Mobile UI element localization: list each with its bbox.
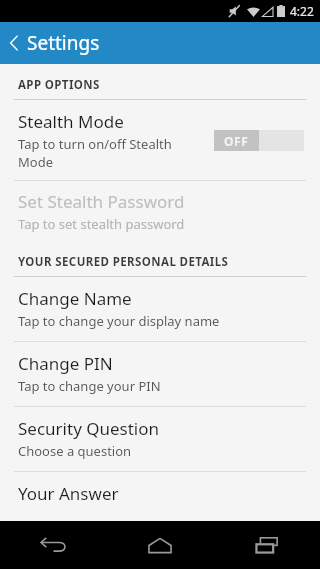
staticText: Tap to change your PIN — [18, 377, 161, 395]
button[interactable]: Security Question — [0, 407, 320, 471]
button[interactable]: Change Name — [0, 277, 320, 341]
staticText: Tap to change your display name — [18, 312, 220, 330]
staticText: APP OPTIONS — [18, 77, 100, 93]
button[interactable]: Stealth Mode — [0, 100, 320, 180]
staticText: 4:22 — [290, 3, 314, 19]
button[interactable]: Back — [0, 521, 106, 569]
button[interactable]: Settings — [0, 22, 320, 64]
staticText: Settings — [27, 30, 100, 56]
staticText: Stealth Mode — [18, 110, 124, 133]
staticText: Tap to set stealth password — [18, 215, 185, 233]
staticText: Set Stealth Password — [18, 190, 185, 213]
button[interactable]: Change PIN — [0, 342, 320, 406]
staticText: Change PIN — [18, 352, 113, 375]
staticText: YOUR SECURED PERSONAL DETAILS — [18, 254, 229, 270]
button[interactable]: Stealth Mode toggle, off — [214, 130, 304, 151]
button[interactable]: Recent apps — [213, 521, 320, 569]
staticText: Change Name — [18, 287, 132, 310]
button[interactable]: Your Answer — [0, 472, 320, 521]
button[interactable]: Set Stealth Password — [0, 181, 320, 242]
staticText: Tap to turn on/off Stealth Mode — [18, 135, 206, 171]
staticText: OFF — [224, 133, 249, 149]
staticText: Choose a question — [18, 442, 132, 460]
staticText: Your Answer — [18, 482, 119, 505]
staticText: Security Question — [18, 417, 160, 440]
button[interactable]: Home — [106, 521, 213, 569]
